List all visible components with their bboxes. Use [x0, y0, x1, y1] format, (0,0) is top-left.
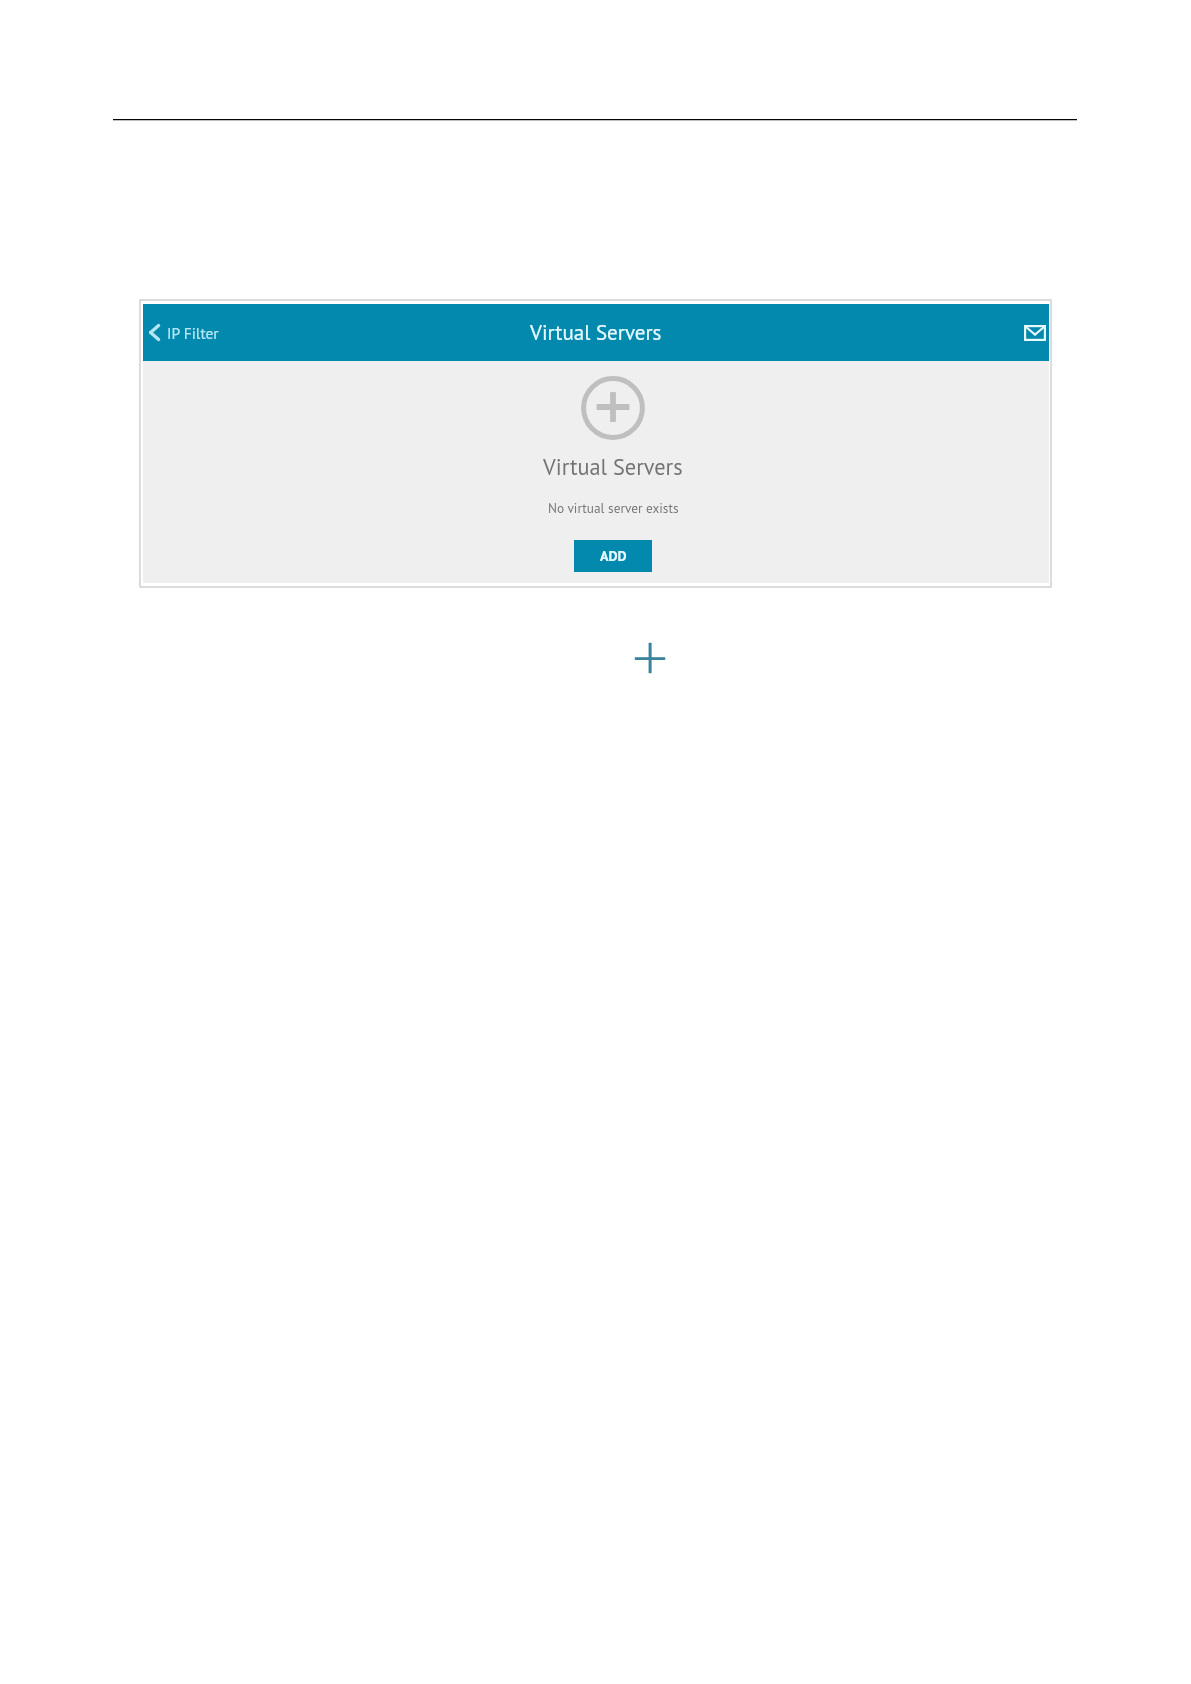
- staticText: Virtual Servers: [543, 452, 683, 481]
- staticText: IP Filter: [167, 323, 219, 343]
- button[interactable]: IP Filter: [146, 304, 225, 361]
- staticText: Virtual Servers: [530, 319, 662, 346]
- staticText: ADD: [600, 547, 627, 565]
- button[interactable]: Messages: [1003, 304, 1049, 361]
- staticText: No virtual server exists: [548, 499, 679, 516]
- button[interactable]: ADD: [574, 540, 652, 572]
- button[interactable]: Add virtual server: [581, 376, 645, 440]
- button[interactable]: Add: [630, 638, 670, 678]
